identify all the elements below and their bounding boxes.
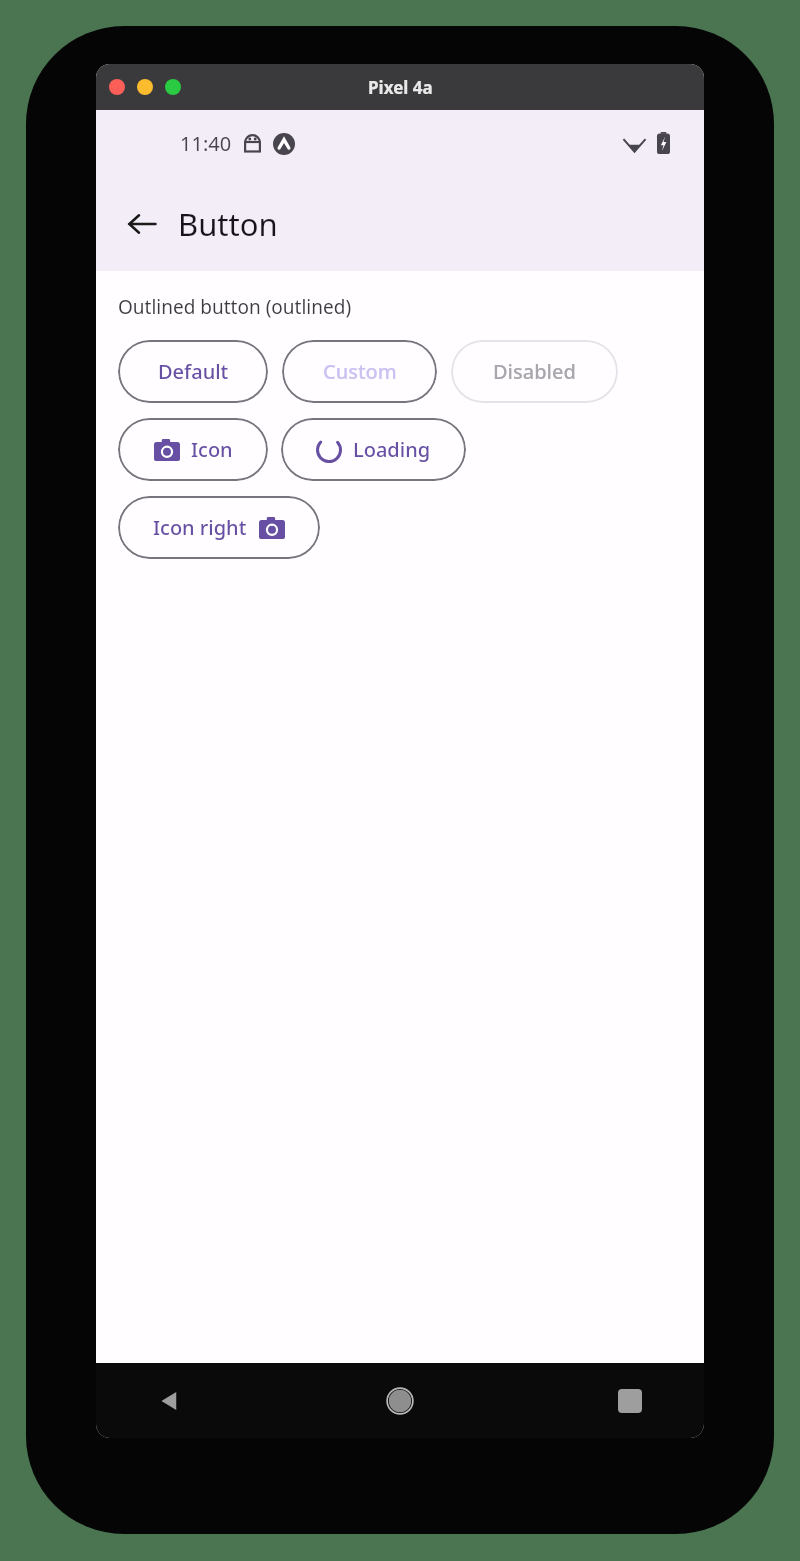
staticText: Loading	[353, 436, 431, 463]
staticText: Button	[178, 203, 278, 245]
staticText: Icon	[191, 436, 233, 463]
button[interactable]: Back	[142, 1373, 198, 1429]
button[interactable]: Close	[109, 79, 125, 95]
staticText: Icon right	[153, 514, 247, 541]
staticText: Default	[158, 358, 229, 385]
button[interactable]: Maximize	[165, 79, 181, 95]
button[interactable]: Loading	[281, 418, 466, 481]
button[interactable]: Disabled	[451, 340, 618, 403]
staticText: 11:40	[180, 130, 232, 157]
button[interactable]: Home	[372, 1373, 428, 1429]
button[interactable]: Icon	[118, 418, 268, 481]
button[interactable]: Icon right	[118, 496, 320, 559]
button[interactable]: Back	[118, 200, 166, 248]
button[interactable]: Minimize	[137, 79, 153, 95]
button[interactable]: Custom	[282, 340, 437, 403]
staticText: Custom	[323, 358, 397, 385]
staticText: Disabled	[493, 358, 576, 385]
button[interactable]: Default	[118, 340, 268, 403]
staticText: Pixel 4a	[368, 76, 433, 99]
button[interactable]: Recent apps	[602, 1373, 658, 1429]
staticText: Outlined button (outlined)	[118, 294, 352, 320]
